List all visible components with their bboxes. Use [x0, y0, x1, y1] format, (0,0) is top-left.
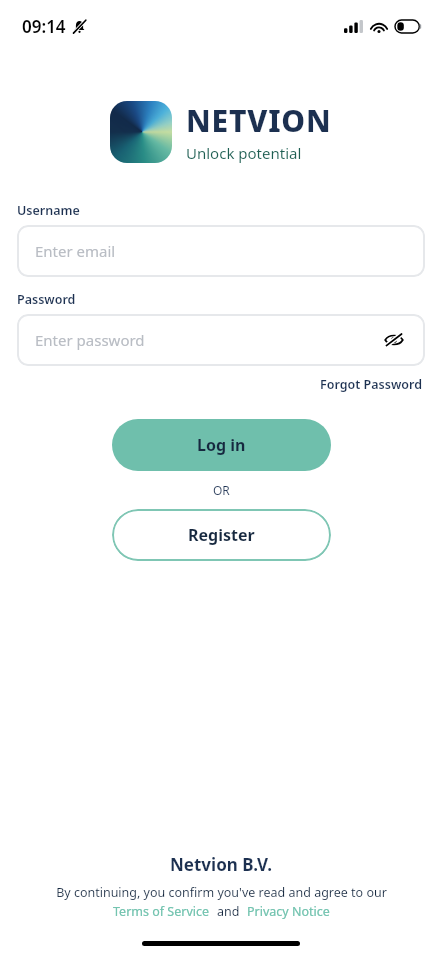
staticText: Unlock potential [186, 143, 302, 163]
button[interactable]: Privacy Notice [246, 903, 331, 920]
button[interactable]: Log in [112, 419, 331, 471]
staticText: and [217, 903, 240, 920]
button[interactable]: Forgot Password [318, 374, 425, 395]
staticText: OR [213, 482, 230, 498]
staticText: Register [188, 524, 255, 546]
staticText: Privacy Notice [247, 903, 330, 920]
staticText: Username [17, 202, 80, 219]
staticText: Password [17, 291, 76, 308]
staticText: Terms of Service [113, 903, 210, 920]
staticText: Netvion B.V. [170, 853, 273, 876]
staticText: Log in [197, 434, 246, 456]
staticText: Forgot Password [320, 376, 423, 393]
button[interactable]: Terms of Service [112, 903, 211, 920]
staticText: Enter email [35, 241, 116, 261]
button[interactable]: Enter password [17, 314, 425, 366]
button[interactable]: Register [112, 509, 331, 561]
staticText: By continuing, you confirm you've read a… [56, 884, 387, 901]
button[interactable]: Show password [381, 327, 407, 353]
button[interactable]: Enter email [17, 225, 425, 277]
staticText: 09:14 [22, 15, 66, 38]
staticText: NETVION [186, 100, 332, 141]
staticText: Enter password [35, 330, 145, 350]
